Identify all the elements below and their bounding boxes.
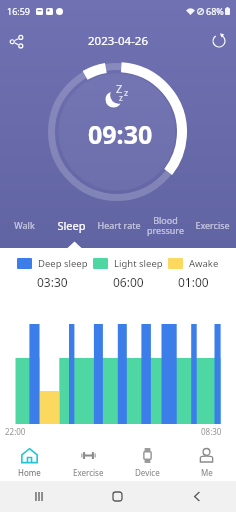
staticText: Exercise	[195, 219, 230, 231]
staticText: z	[119, 92, 123, 103]
staticText: Deep sleep	[38, 257, 88, 270]
staticText: Sleep	[57, 218, 86, 233]
staticText: 08:30	[201, 426, 222, 437]
button[interactable]: Refresh	[206, 28, 232, 54]
staticText: Home	[18, 467, 41, 478]
staticText: Walk	[14, 219, 35, 231]
staticText: 03:30	[37, 274, 68, 290]
staticText: 06:00	[113, 274, 144, 290]
staticText: Light sleep	[114, 257, 163, 270]
staticText: 16:59	[7, 5, 31, 17]
staticText: Z	[116, 81, 123, 96]
button[interactable]: Recent apps	[0, 481, 78, 512]
staticText: 09:30	[88, 117, 153, 151]
staticText: Heart rate	[97, 219, 141, 231]
button[interactable]: Home	[78, 481, 157, 512]
staticText: 2023-04-26	[88, 33, 149, 49]
staticText: Device	[135, 467, 160, 478]
staticText: Blood pressure	[147, 214, 184, 236]
button[interactable]: Share	[3, 28, 29, 54]
button[interactable]: Back	[157, 481, 236, 512]
staticText: 68%	[206, 5, 224, 17]
button[interactable]: Sleep	[48, 212, 95, 238]
button[interactable]: Exercise	[59, 442, 118, 482]
staticText: 22:00	[5, 426, 26, 437]
button[interactable]: Blood pressure	[142, 212, 189, 238]
staticText: Exercise	[73, 467, 104, 478]
button[interactable]: Me	[177, 442, 236, 482]
staticText: Me	[201, 467, 213, 478]
staticText: 01:00	[178, 274, 209, 290]
staticText: Awake	[189, 257, 219, 270]
button[interactable]: Walk	[0, 212, 48, 238]
button[interactable]: Heart rate	[95, 212, 142, 238]
button[interactable]: Exercise	[189, 212, 236, 238]
staticText: z	[124, 86, 129, 98]
button[interactable]: Device	[118, 442, 177, 482]
button[interactable]: Home	[0, 442, 59, 482]
